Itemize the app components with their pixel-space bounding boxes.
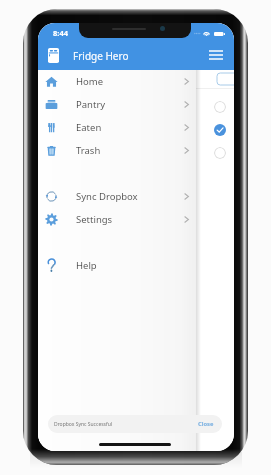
button[interactable]: Trash — [38, 139, 196, 162]
staticText: Help — [76, 259, 97, 272]
button[interactable]: App icon — [46, 47, 61, 64]
button[interactable]: Home — [38, 70, 196, 93]
staticText: Settings — [76, 213, 113, 226]
staticText: Trash — [76, 144, 101, 157]
button[interactable]: Settings — [38, 208, 196, 231]
staticText: 8:44 — [53, 28, 68, 38]
button[interactable]: Select item — [214, 147, 226, 159]
button[interactable]: Selected item — [214, 124, 226, 136]
button[interactable]: Help — [38, 254, 196, 277]
button[interactable]: Search — [217, 73, 234, 85]
staticText: Dropbox Sync Successful — [54, 421, 113, 428]
staticText: Pantry — [76, 98, 106, 111]
button[interactable]: Eaten — [38, 116, 196, 139]
staticText: Sync Dropbox — [76, 190, 138, 203]
button[interactable]: Dropbox Sync Successful — [48, 415, 222, 433]
button[interactable]: Sync Dropbox — [38, 185, 196, 208]
button[interactable]: Menu — [203, 42, 229, 68]
staticText: Home — [76, 75, 104, 88]
staticText: Close — [198, 420, 214, 428]
staticText: Fridge Hero — [73, 49, 129, 63]
button[interactable]: Pantry — [38, 93, 196, 116]
staticText: Eaten — [76, 121, 102, 134]
button[interactable]: Close — [194, 417, 218, 431]
button[interactable]: Select item — [214, 101, 226, 113]
